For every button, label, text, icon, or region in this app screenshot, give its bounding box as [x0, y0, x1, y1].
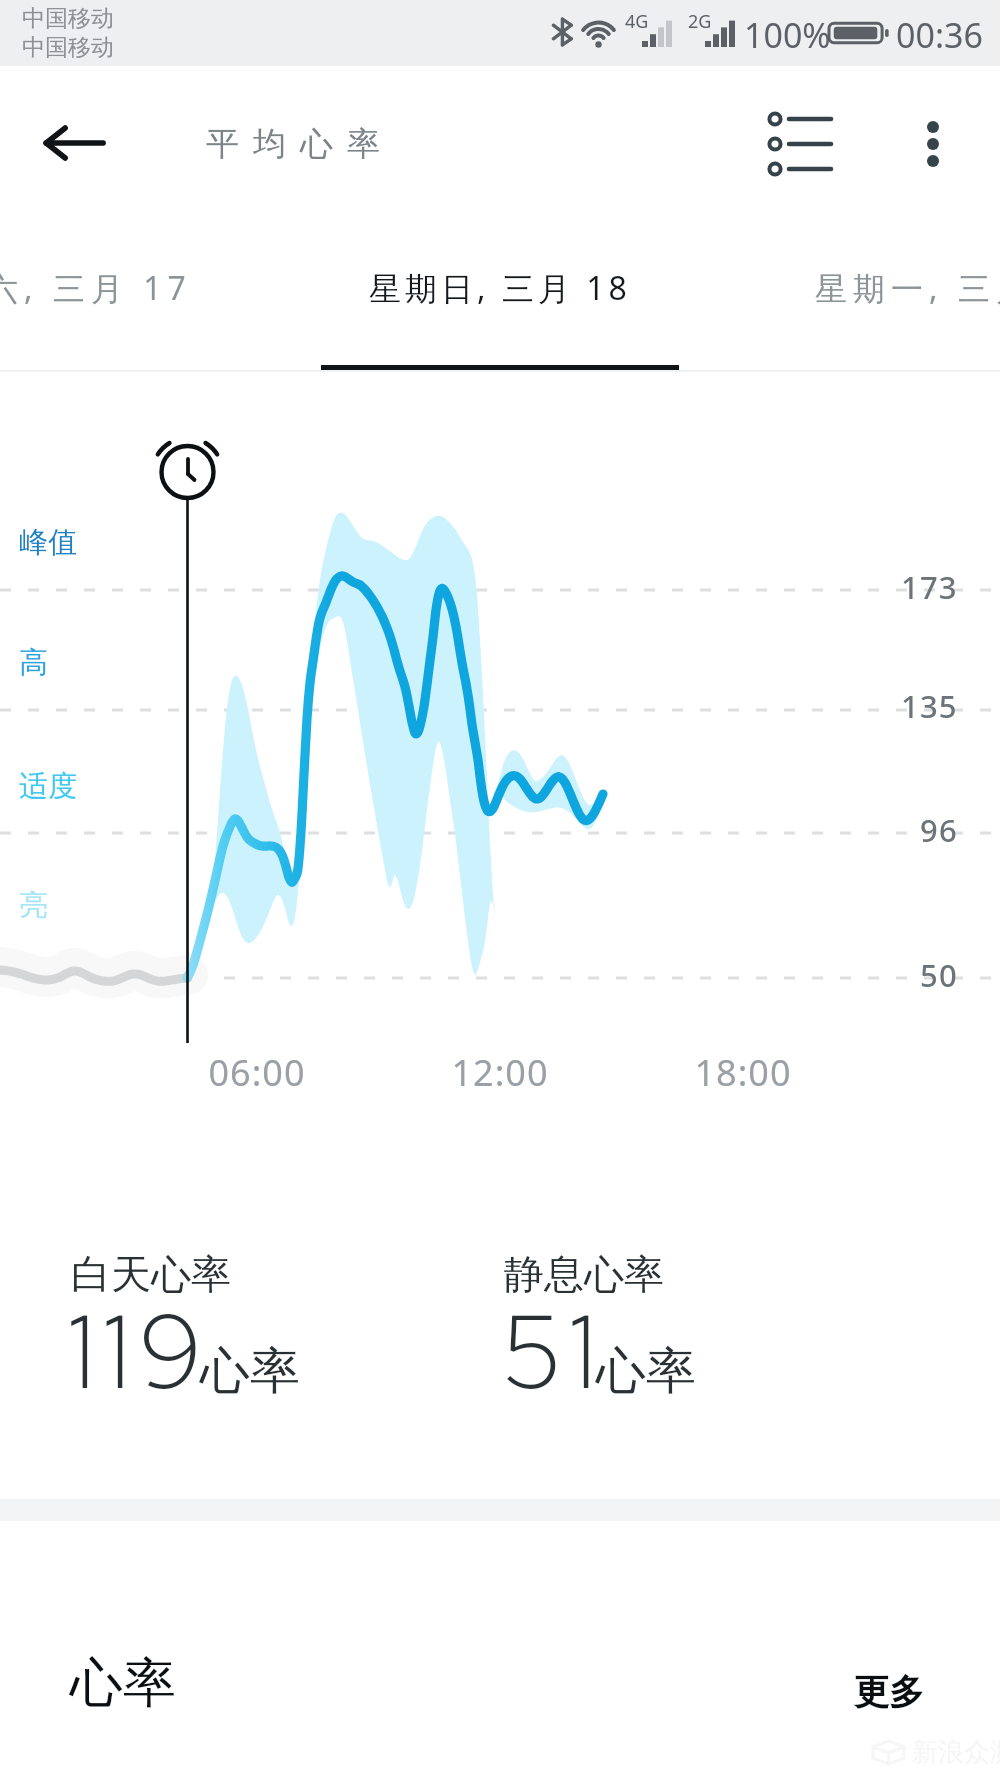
staticText: 星期一, 三月 19 [815, 266, 1000, 310]
staticText: 06:00 [208, 1048, 306, 1097]
staticText: 119 [68, 1282, 211, 1420]
staticText: 2G [688, 9, 712, 34]
staticText: 心率 [70, 1650, 176, 1717]
button[interactable]: 星期日, 三月 18 [330, 228, 670, 348]
staticText: 适度 [19, 768, 77, 805]
button[interactable]: List view [748, 87, 848, 187]
staticText: 中国移动 [22, 4, 114, 33]
staticText: 平均心率 [199, 123, 387, 165]
staticText: 星期六, 三月 17 [0, 266, 192, 310]
staticText: 135 [901, 685, 958, 727]
button[interactable]: 心率 [70, 1650, 924, 1717]
staticText: 4G [625, 9, 649, 34]
staticText: 新浪众测 [912, 1736, 1000, 1769]
staticText: 51 [501, 1282, 605, 1420]
staticText: 亮 [19, 887, 48, 924]
staticText: 白天心率 [71, 1249, 231, 1299]
staticText: 96 [920, 809, 958, 851]
staticText: 星期日, 三月 18 [369, 266, 631, 310]
staticText: 100% [744, 12, 831, 58]
staticText: 心率 [200, 1340, 300, 1403]
button[interactable]: 白天心率 [70, 1222, 230, 1360]
staticText: 00:36 [896, 12, 983, 58]
staticText: 静息心率 [504, 1249, 664, 1299]
staticText: 高 [19, 644, 48, 681]
staticText: 中国移动 [22, 33, 114, 62]
staticText: 18:00 [694, 1048, 792, 1097]
staticText: 心率 [596, 1340, 696, 1403]
staticText: 峰值 [19, 524, 77, 561]
button[interactable]: Back [26, 103, 106, 183]
button[interactable]: 静息心率 [503, 1222, 663, 1360]
button[interactable]: 星期六, 三月 17 [0, 228, 192, 348]
staticText: 更多 [854, 1670, 924, 1714]
button[interactable]: More options [893, 87, 973, 187]
staticText: 50 [920, 954, 958, 996]
button[interactable]: 星期一, 三月 19 [815, 228, 1000, 348]
staticText: 173 [901, 566, 958, 608]
staticText: 12:00 [451, 1048, 549, 1097]
